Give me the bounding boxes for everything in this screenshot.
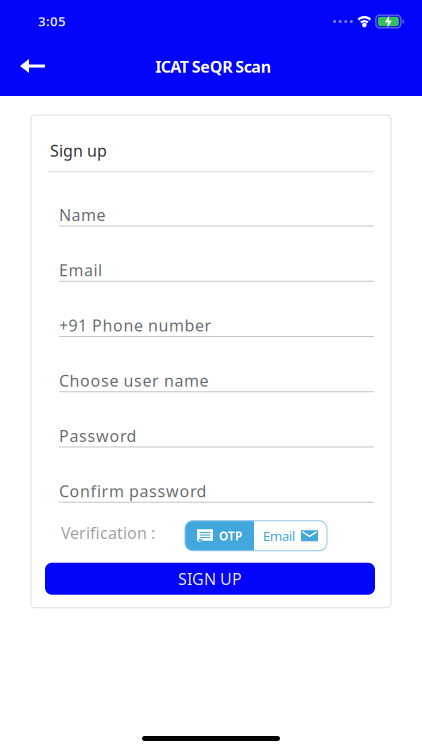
staticText: 3:05 (38, 12, 66, 30)
staticText: SIGN UP (178, 568, 242, 589)
staticText: Verification : (61, 522, 155, 543)
button[interactable]: Back (10, 49, 55, 83)
button[interactable]: SIGN UP (45, 563, 375, 595)
staticText: OTP (219, 528, 242, 544)
staticText: Choose user name (59, 370, 208, 391)
staticText: +91 Phone number (59, 315, 211, 336)
staticText: Email (263, 527, 295, 545)
staticText: Confirm password (59, 480, 206, 502)
staticText: ICAT SeQR Scan (155, 56, 271, 77)
button[interactable]: OTP (185, 521, 254, 551)
staticText: Name (59, 204, 105, 225)
staticText: Password (59, 425, 136, 446)
button[interactable]: Email (254, 521, 327, 551)
staticText: Email (59, 259, 102, 281)
staticText: Sign up (50, 140, 107, 161)
